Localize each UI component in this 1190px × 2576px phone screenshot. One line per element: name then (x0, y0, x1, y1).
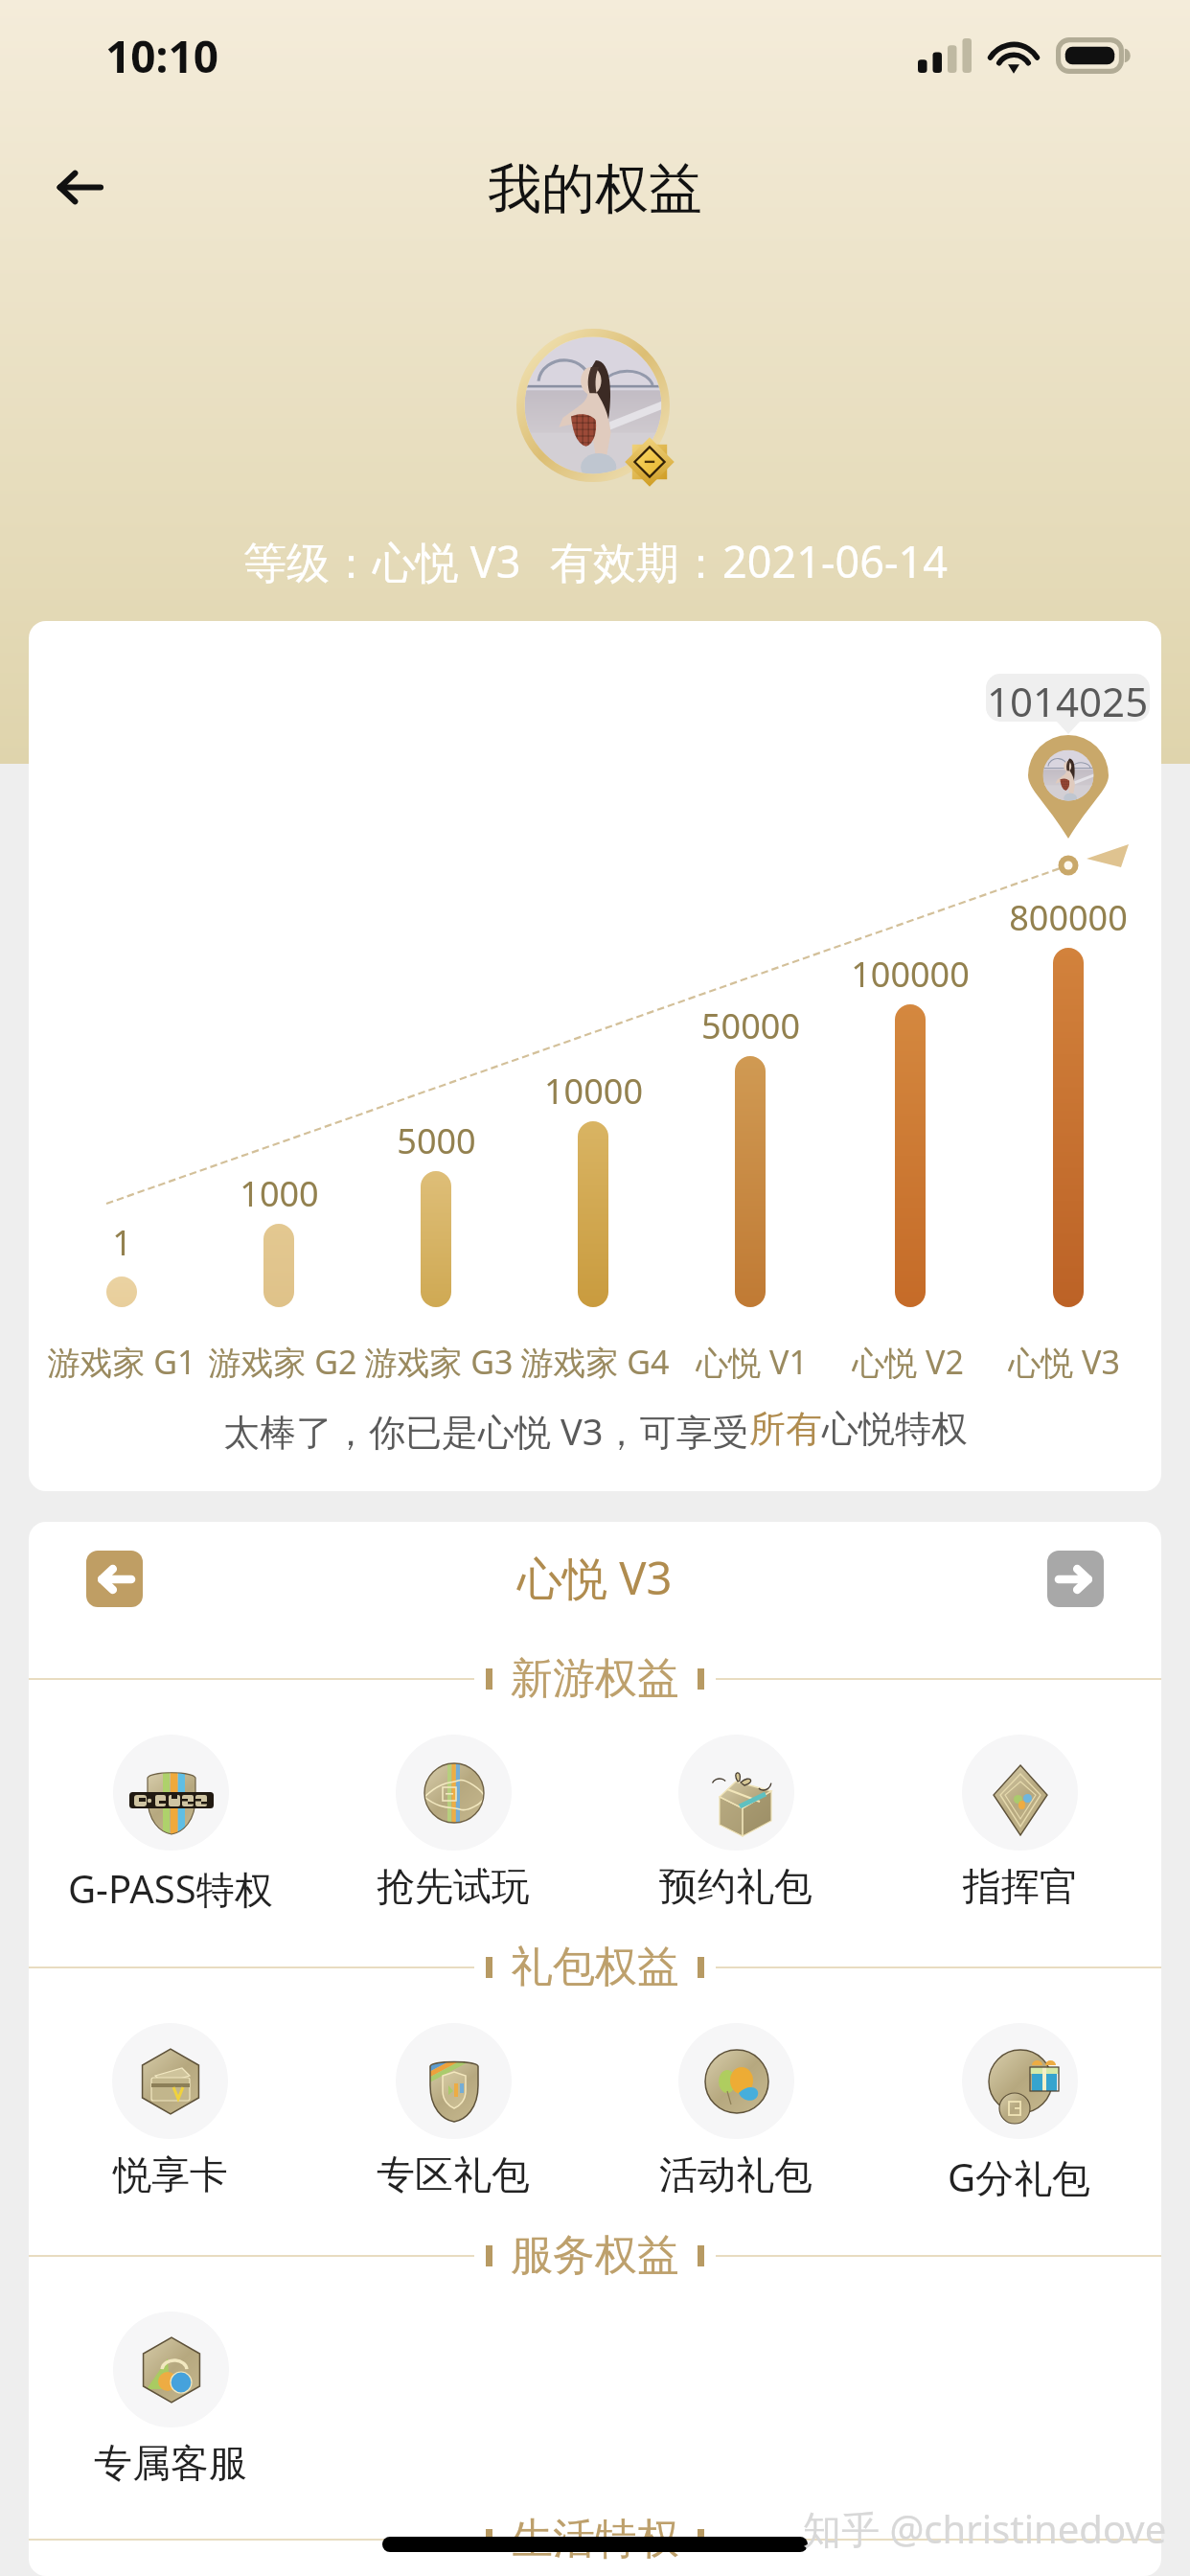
staticText: 所有 (749, 1406, 822, 1452)
staticText: 我的权益 (488, 155, 702, 223)
staticText: 生活特权 (511, 2513, 679, 2565)
staticText: 服务权益 (511, 2229, 679, 2282)
staticText: 心悦 V3 (1008, 1340, 1120, 1384)
staticText: 游戏家 G4 (520, 1340, 670, 1384)
button[interactable]: Previous level (86, 1551, 143, 1607)
staticText: 10000 (544, 1068, 643, 1115)
staticText: 游戏家 G3 (364, 1340, 514, 1384)
staticText: 专区礼包 (377, 2150, 530, 2198)
staticText: 心悦 V1 (696, 1340, 808, 1384)
staticText: 新游权益 (511, 1652, 679, 1705)
staticText: 1014025 (987, 674, 1149, 722)
staticText: 等级：心悦 V3 (243, 532, 521, 590)
staticText: 1000 (240, 1170, 319, 1217)
staticText: 指挥官 (963, 1862, 1078, 1910)
staticText: 心悦 V2 (852, 1340, 964, 1384)
staticText: 游戏家 G2 (208, 1340, 357, 1384)
button[interactable]: 悦享卡 (112, 2023, 228, 2198)
staticText: 心悦特权 (822, 1406, 968, 1452)
button[interactable]: 抢先试玩 (377, 1735, 530, 1910)
staticText: 100000 (851, 951, 970, 998)
button[interactable]: 专属客服 (94, 2311, 247, 2487)
staticText: G分礼包 (948, 2150, 1091, 2203)
button[interactable]: G-PASS特权 (68, 1735, 273, 1915)
staticText: 悦享卡 (113, 2150, 228, 2198)
staticText: 活动礼包 (659, 2150, 812, 2198)
button[interactable]: 预约礼包 (659, 1735, 812, 1910)
button[interactable]: 专区礼包 (377, 2023, 530, 2198)
staticText: 抢先试玩 (377, 1862, 530, 1910)
staticText: 有效期：2021-06-14 (550, 532, 948, 590)
button[interactable]: 指挥官 (962, 1735, 1078, 1910)
button[interactable]: Next level (1047, 1551, 1104, 1607)
staticText: 800000 (1009, 894, 1128, 941)
staticText: 礼包权益 (511, 1941, 679, 1993)
button[interactable]: Back (21, 129, 136, 244)
staticText: 知乎 @christinedove (803, 2502, 1167, 2555)
staticText: G-PASS特权 (68, 1862, 273, 1915)
staticText: 1 (112, 1219, 132, 1266)
staticText: 心悦 V3 (517, 1547, 673, 1608)
button[interactable]: G分礼包 (948, 2023, 1091, 2203)
staticText: 预约礼包 (659, 1862, 812, 1910)
button[interactable]: 活动礼包 (659, 2023, 812, 2198)
staticText: 10:10 (105, 26, 219, 86)
staticText: 游戏家 G1 (47, 1340, 196, 1384)
staticText: 50000 (701, 1002, 800, 1049)
staticText: 专属客服 (94, 2439, 247, 2487)
staticText: 5000 (397, 1117, 476, 1164)
staticText: 太棒了，你已是心悦 V3，可享受 (223, 1406, 749, 1456)
